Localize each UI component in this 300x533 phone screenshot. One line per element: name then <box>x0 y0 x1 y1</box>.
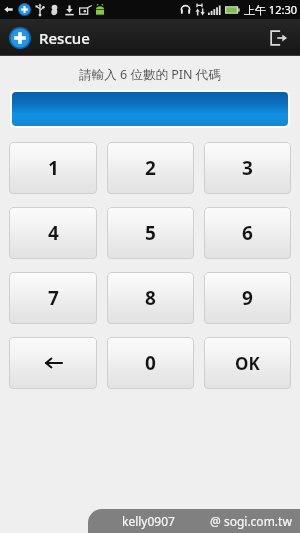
staticText: 9 <box>242 285 253 311</box>
staticText: 8 <box>145 285 156 311</box>
button[interactable]: 2 <box>107 142 194 194</box>
staticText: Powered by <box>255 508 294 518</box>
button[interactable]: Backspace <box>9 337 97 389</box>
button[interactable]: 0 <box>107 337 194 389</box>
staticText: 0 <box>145 350 156 376</box>
staticText: 請輸入 6 位數的 PIN 代碼 <box>0 66 300 83</box>
staticText: @ sogi.com.tw <box>210 513 292 529</box>
button[interactable]: OK <box>204 337 291 389</box>
staticText: 1 <box>48 155 59 181</box>
staticText: 7 <box>48 285 59 311</box>
button[interactable]: 1 <box>9 142 97 194</box>
button[interactable]: 8 <box>107 272 194 324</box>
staticText: 6 <box>242 220 253 246</box>
button[interactable]: PIN code input <box>12 92 288 126</box>
button[interactable]: 4 <box>9 207 97 259</box>
staticText: 上午 12:30 <box>244 2 297 17</box>
button[interactable]: 6 <box>204 207 291 259</box>
button[interactable]: 9 <box>204 272 291 324</box>
button[interactable]: 5 <box>107 207 194 259</box>
button[interactable]: 7 <box>9 272 97 324</box>
staticText: 5 <box>145 220 156 246</box>
staticText: OK <box>235 352 260 375</box>
staticText: 4 <box>48 220 59 246</box>
staticText: 2 <box>145 155 156 181</box>
staticText: Rescue <box>39 28 90 48</box>
staticText: 3 <box>242 155 253 181</box>
button[interactable]: Log out <box>256 19 300 56</box>
staticText: kelly0907 <box>122 513 175 529</box>
button[interactable]: 3 <box>204 142 291 194</box>
